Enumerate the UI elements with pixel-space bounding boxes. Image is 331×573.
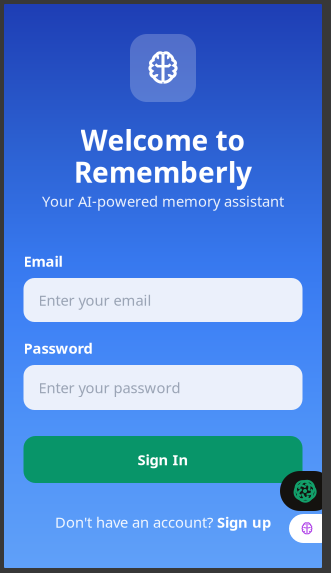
staticText: Don't have an account? bbox=[55, 512, 213, 532]
staticText: Enter your email bbox=[38, 290, 151, 310]
staticText: Your AI-powered memory assistant bbox=[42, 191, 284, 211]
button[interactable]: Built with Claude bbox=[280, 471, 331, 511]
staticText: Rememberly bbox=[74, 153, 252, 191]
staticText: Email bbox=[23, 251, 62, 271]
staticText: Enter your password bbox=[38, 378, 180, 397]
button[interactable]: Don't have an account? bbox=[55, 514, 271, 530]
staticText: Password bbox=[23, 338, 92, 358]
staticText: Sign In bbox=[137, 450, 188, 469]
staticText: Sign up bbox=[217, 512, 271, 532]
button[interactable]: Enter your email bbox=[23, 278, 302, 322]
button[interactable]: Enter your password bbox=[23, 365, 302, 410]
staticText: Welcome to bbox=[80, 121, 245, 159]
button[interactable]: Rememberly bbox=[289, 514, 331, 543]
button[interactable]: Sign In bbox=[23, 436, 302, 483]
